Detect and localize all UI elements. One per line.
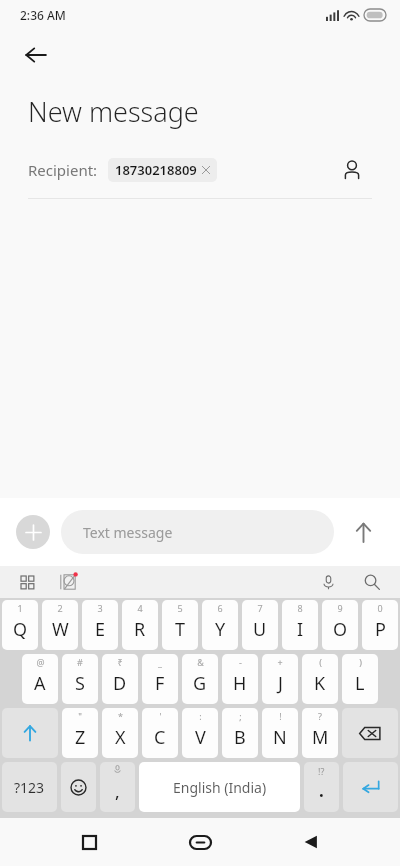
button[interactable]: Voice input <box>314 568 342 596</box>
button[interactable]: 5 <box>162 600 198 650</box>
button[interactable]: Back <box>289 820 333 864</box>
staticText: 6 <box>217 602 223 614</box>
staticText: * <box>118 710 123 722</box>
button[interactable]: # <box>62 654 98 704</box>
button[interactable]: : <box>182 708 218 758</box>
staticText: N <box>273 725 287 750</box>
staticText: + <box>277 656 283 668</box>
staticText: ₹ <box>117 656 123 668</box>
button[interactable]: " <box>62 708 98 758</box>
staticText: K <box>314 671 326 696</box>
staticText: !? <box>318 765 325 777</box>
staticText: G <box>193 671 207 696</box>
staticText: Text message <box>83 523 173 542</box>
staticText: J <box>278 671 283 696</box>
button[interactable]: ₹ <box>102 654 138 704</box>
button[interactable]: Add attachment <box>16 515 50 549</box>
staticText: ?123 <box>14 778 45 797</box>
button[interactable]: Keyboard options <box>14 569 40 595</box>
button[interactable]: 18730218809 <box>108 158 217 182</box>
staticText: P <box>375 617 386 642</box>
staticText: I <box>297 617 304 642</box>
button[interactable]: English (India) <box>139 762 300 812</box>
staticText: Y <box>215 617 226 642</box>
button[interactable]: - <box>222 654 258 704</box>
staticText: V <box>195 725 206 750</box>
button[interactable]: ! <box>262 708 298 758</box>
button[interactable]: , <box>100 762 135 812</box>
staticText: . <box>319 779 324 802</box>
staticText: T <box>175 617 186 642</box>
staticText: H <box>233 671 247 696</box>
staticText: Q <box>13 617 28 642</box>
staticText: ; <box>239 710 242 722</box>
button[interactable]: 3 <box>82 600 118 650</box>
button[interactable]: Contacts <box>332 150 372 190</box>
staticText: 18730218809 <box>115 161 197 179</box>
staticText: 0 <box>377 602 383 614</box>
button[interactable]: Home <box>178 820 222 864</box>
staticText: ' <box>159 710 162 722</box>
staticText: S <box>75 671 85 696</box>
staticText: U <box>253 617 267 642</box>
staticText: 7 <box>257 602 263 614</box>
staticText: " <box>78 710 82 722</box>
staticText: - <box>239 656 242 668</box>
staticText: R <box>134 617 146 642</box>
staticText: D <box>113 671 127 696</box>
staticText: 9 <box>337 602 343 614</box>
staticText: L <box>355 671 365 696</box>
button[interactable]: 9 <box>322 600 358 650</box>
button[interactable]: ) <box>342 654 378 704</box>
button[interactable]: Text message <box>61 510 334 554</box>
button[interactable]: Enter <box>343 762 398 812</box>
button[interactable]: Recents <box>67 820 111 864</box>
button[interactable]: 0 <box>362 600 398 650</box>
button[interactable]: 2 <box>42 600 78 650</box>
button[interactable]: + <box>262 654 298 704</box>
staticText: ) <box>359 656 362 668</box>
button[interactable]: Emoji <box>61 762 96 812</box>
button[interactable]: !? <box>304 762 339 812</box>
staticText: English (India) <box>173 778 267 797</box>
staticText: New message <box>28 93 199 130</box>
staticText: 8 <box>297 602 303 614</box>
button[interactable]: Send <box>342 511 384 553</box>
staticText: E <box>95 617 106 642</box>
button[interactable]: Backspace <box>342 708 398 758</box>
button[interactable]: 1 <box>2 600 38 650</box>
staticText: _ <box>158 656 162 668</box>
staticText: 2:36 AM <box>20 7 66 23</box>
button[interactable]: ? <box>302 708 338 758</box>
staticText: Recipient: <box>28 160 98 180</box>
staticText: A <box>34 671 46 696</box>
button[interactable]: * <box>102 708 138 758</box>
button[interactable]: Shift <box>2 708 58 758</box>
staticText: Z <box>75 725 86 750</box>
button[interactable]: 6 <box>202 600 238 650</box>
button[interactable]: ; <box>222 708 258 758</box>
staticText: 4 <box>137 602 143 614</box>
button[interactable]: _ <box>142 654 178 704</box>
button[interactable]: 7 <box>242 600 278 650</box>
staticText: ? <box>318 710 322 722</box>
button[interactable]: ' <box>142 708 178 758</box>
staticText: ! <box>279 710 282 722</box>
staticText: F <box>155 671 165 696</box>
button[interactable]: 4 <box>122 600 158 650</box>
button[interactable]: 8 <box>282 600 318 650</box>
button[interactable]: Search <box>358 568 386 596</box>
button[interactable]: ( <box>302 654 338 704</box>
button[interactable]: & <box>182 654 218 704</box>
staticText: M <box>312 725 329 750</box>
button[interactable]: @ <box>22 654 58 704</box>
button[interactable]: Back <box>14 33 58 77</box>
staticText: 1 <box>17 602 23 614</box>
staticText: 2 <box>57 602 63 614</box>
staticText: W <box>52 617 69 642</box>
staticText: C <box>154 725 166 750</box>
staticText: O <box>333 617 348 642</box>
staticText: # <box>77 656 83 668</box>
button[interactable]: ?123 <box>2 762 57 812</box>
button[interactable]: Sticker <box>54 568 82 596</box>
